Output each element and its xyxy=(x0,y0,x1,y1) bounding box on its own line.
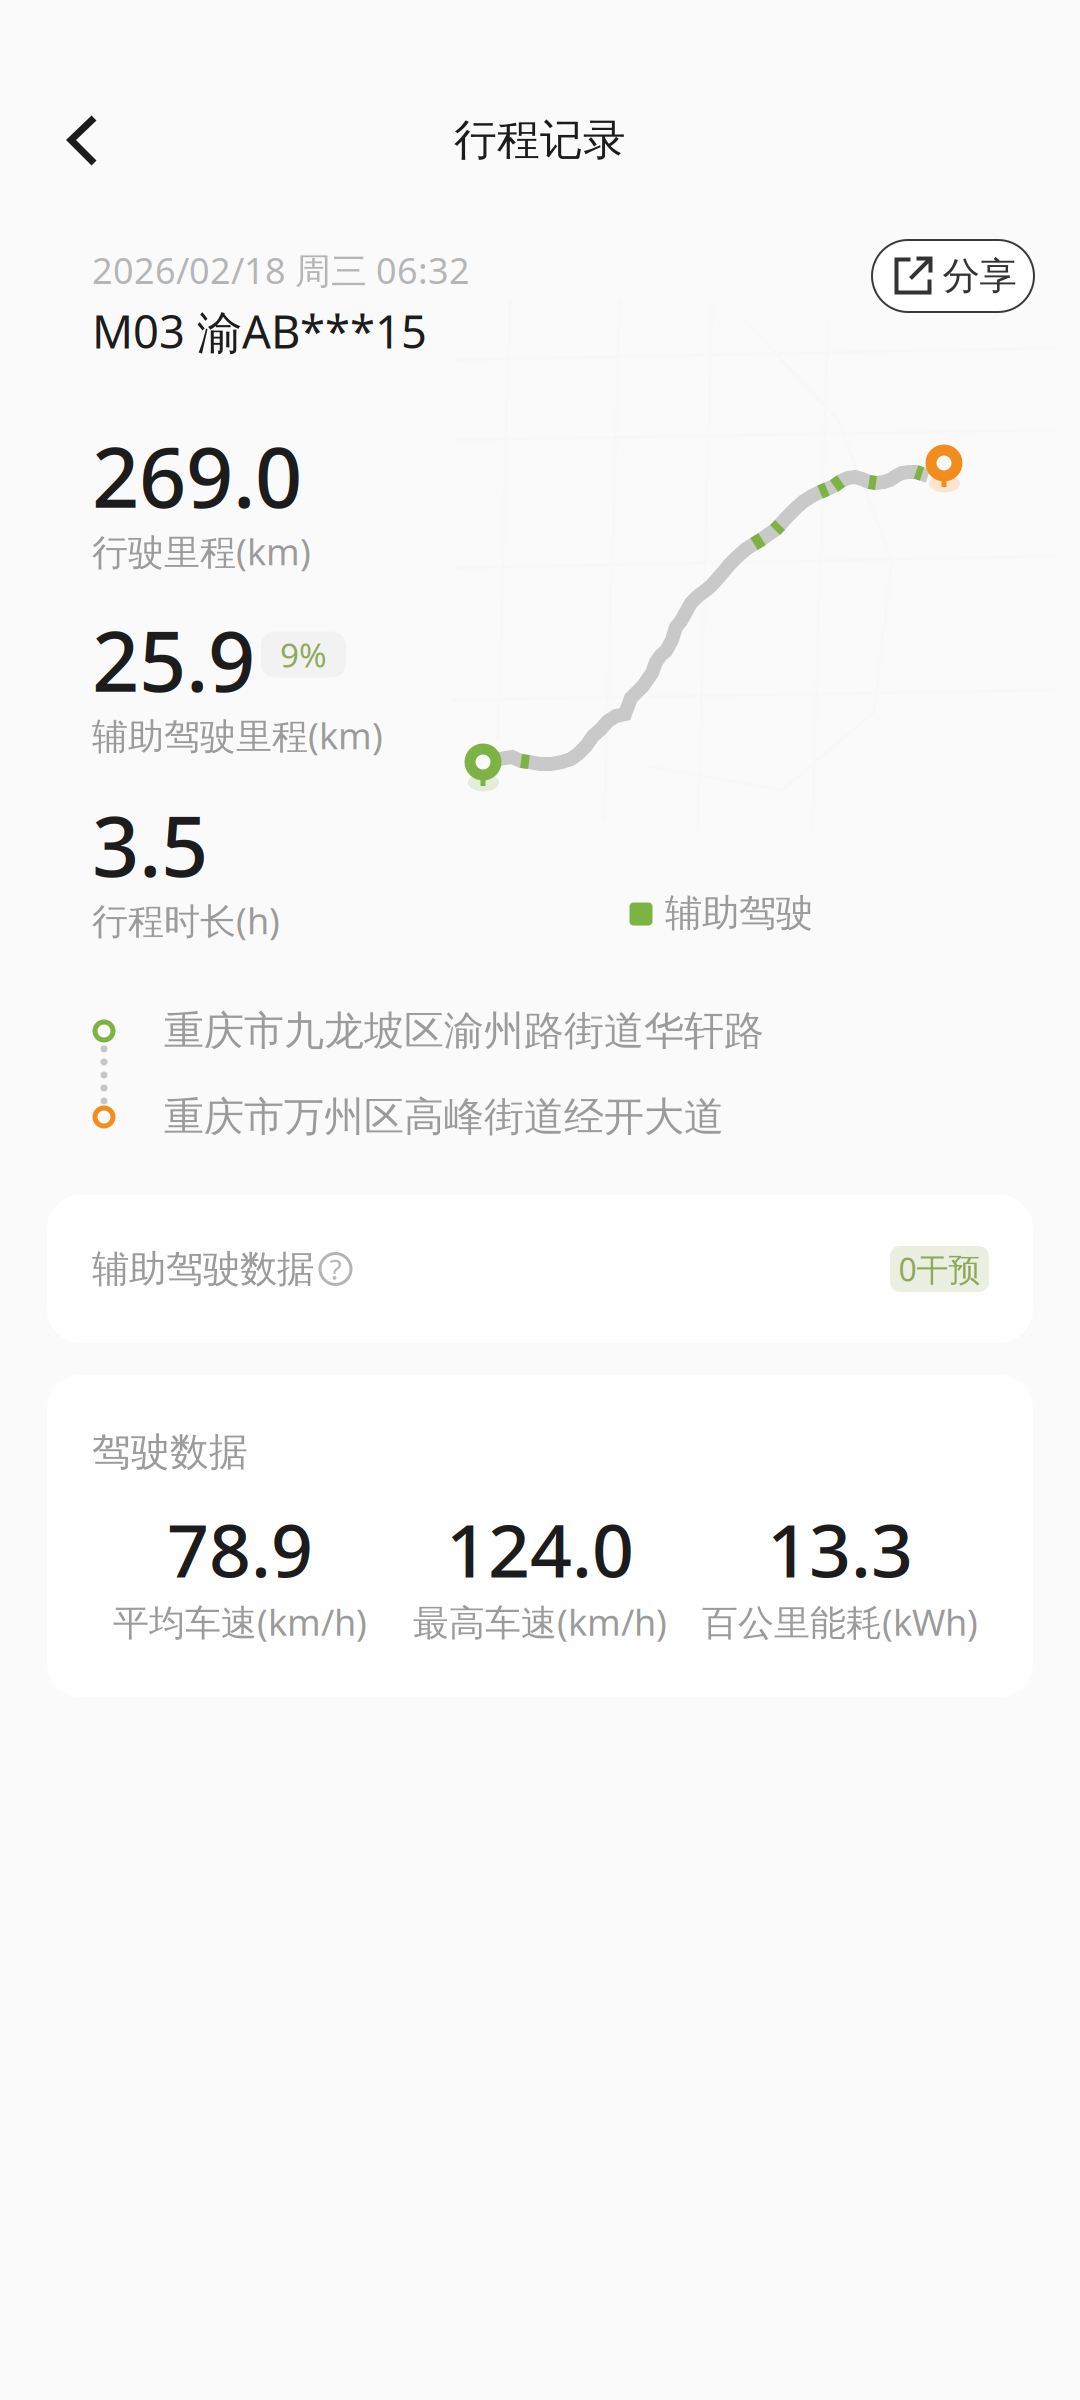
staticText: 269.0 xyxy=(92,421,302,530)
staticText: 重庆市万州区高峰街道经开大道 xyxy=(164,1092,724,1141)
staticText: 78.9 xyxy=(167,1500,313,1598)
staticText: 13.3 xyxy=(767,1500,913,1598)
staticText: 25.9 xyxy=(92,605,255,714)
staticText: 行程时长(h) xyxy=(92,896,280,944)
button[interactable]: 分享 xyxy=(872,240,1034,312)
staticText: ? xyxy=(329,1250,341,1288)
button[interactable]: Back xyxy=(48,88,118,192)
staticText: 0干预 xyxy=(898,1248,980,1290)
staticText: 分享 xyxy=(942,253,1016,299)
staticText: 百公里能耗(kWh) xyxy=(702,1598,978,1646)
staticText: 辅助驾驶 xyxy=(665,890,813,936)
staticText: 3.5 xyxy=(92,790,208,899)
staticText: 辅助驾驶数据 xyxy=(92,1246,314,1292)
staticText: 重庆市九龙坡区渝州路街道华轩路 xyxy=(164,1006,764,1055)
staticText: 最高车速(km/h) xyxy=(413,1598,667,1646)
staticText: 行驶里程(km) xyxy=(92,527,311,575)
button[interactable]: 辅助驾驶数据 xyxy=(47,1195,1033,1343)
staticText: 9% xyxy=(280,632,327,677)
staticText: 驾驶数据 xyxy=(92,1428,248,1476)
staticText: 辅助驾驶里程(km) xyxy=(92,711,383,759)
staticText: M03 渝AB***15 xyxy=(92,301,427,361)
staticText: 124.0 xyxy=(446,1500,634,1598)
staticText: 平均车速(km/h) xyxy=(113,1598,367,1646)
staticText: 2026/02/18 周三 06:32 xyxy=(92,246,470,294)
staticText: 行程记录 xyxy=(454,114,626,166)
